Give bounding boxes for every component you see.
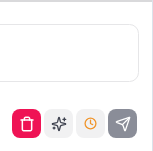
button[interactable]: Delete [12,109,41,138]
button[interactable]: Magic [44,109,73,138]
button[interactable]: History [76,109,105,138]
button[interactable]: Send [108,109,137,138]
